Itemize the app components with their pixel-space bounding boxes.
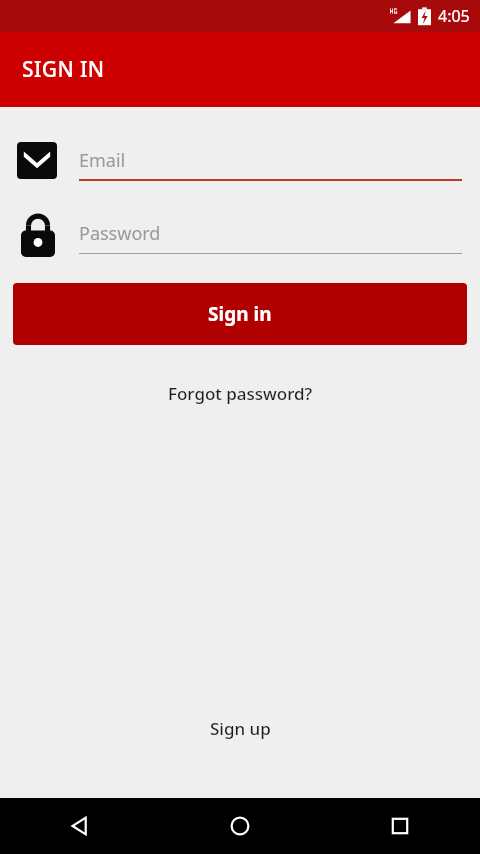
button[interactable]: Sign up bbox=[0, 706, 480, 750]
other: Email bbox=[17, 142, 57, 179]
button[interactable]: Password bbox=[0, 207, 480, 269]
button[interactable]: Email bbox=[0, 134, 480, 200]
staticText: Sign in bbox=[208, 301, 272, 327]
staticText: Sign up bbox=[210, 717, 271, 740]
staticText: SIGN IN bbox=[22, 55, 105, 84]
button[interactable]: Home bbox=[160, 798, 320, 854]
button[interactable]: Sign in bbox=[13, 283, 467, 345]
staticText: Email bbox=[79, 148, 126, 173]
staticText: Forgot password? bbox=[168, 382, 313, 405]
button[interactable]: Back bbox=[0, 798, 160, 854]
other: Password bbox=[21, 213, 55, 257]
staticText: 4:05 bbox=[438, 5, 470, 27]
button[interactable]: Forgot password? bbox=[0, 371, 480, 415]
staticText: Password bbox=[79, 221, 161, 246]
button[interactable]: Recent apps bbox=[320, 798, 480, 854]
